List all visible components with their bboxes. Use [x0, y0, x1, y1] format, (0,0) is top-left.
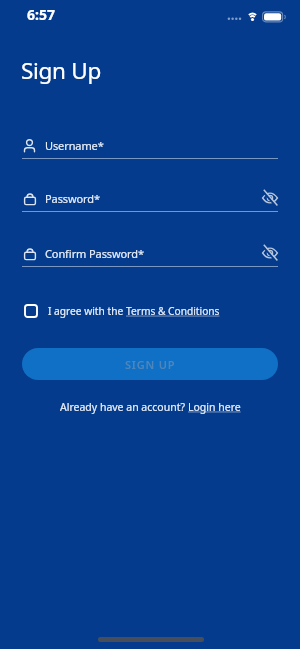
staticText: Confirm Password* [45, 246, 144, 261]
staticText: 6:57 [27, 5, 55, 24]
button[interactable]: SIGN UP [22, 348, 278, 380]
staticText: Username* [45, 138, 104, 153]
staticText: Already have an account? [60, 400, 188, 414]
button[interactable]: Already have an account? [0, 399, 300, 415]
button[interactable]: Username* [0, 125, 300, 159]
button[interactable]: Password* [0, 178, 300, 212]
staticText: Terms & Conditions [126, 304, 220, 318]
staticText: SIGN UP [125, 357, 176, 372]
staticText: Password* [45, 191, 100, 206]
staticText: Login here [188, 400, 241, 414]
button[interactable]: Confirm Password* [0, 233, 300, 267]
staticText: Sign Up [21, 55, 101, 86]
button[interactable]: I agree with the [24, 304, 220, 318]
staticText: I agree with the [48, 304, 126, 318]
